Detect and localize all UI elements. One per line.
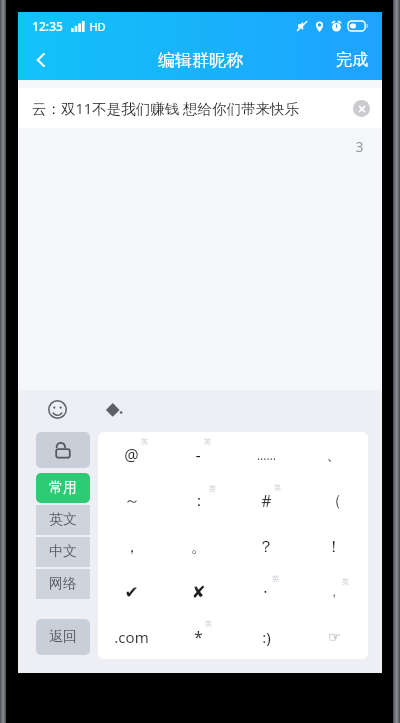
staticText: .com	[114, 627, 149, 647]
staticText: ～	[124, 491, 140, 511]
button[interactable]: .com	[98, 614, 165, 659]
staticText: 完成	[336, 50, 368, 70]
staticText: 英	[209, 484, 216, 493]
button[interactable]: ～	[98, 478, 165, 524]
button[interactable]: ✔	[98, 569, 165, 614]
staticText: 英	[205, 619, 212, 628]
staticText: ✔	[124, 582, 139, 602]
staticText: 英	[141, 437, 148, 446]
staticText: @	[124, 444, 139, 466]
staticText: ·	[263, 581, 268, 603]
button[interactable]: Clear text	[353, 100, 370, 117]
button[interactable]: @	[98, 432, 165, 478]
button[interactable]: 常用	[36, 473, 90, 503]
staticText: 网络	[49, 575, 77, 593]
staticText: （	[326, 491, 342, 511]
button[interactable]: 、	[300, 432, 368, 478]
button[interactable]: 中文	[36, 537, 90, 567]
button[interactable]: ，	[300, 569, 368, 614]
staticText: 12:35	[32, 18, 63, 34]
staticText: ，	[124, 537, 140, 557]
staticText: ：	[191, 491, 207, 511]
staticText: 。	[191, 537, 207, 557]
button[interactable]: 网络	[36, 569, 90, 599]
button[interactable]: ：	[165, 478, 232, 524]
button[interactable]: ？	[232, 524, 300, 569]
button[interactable]: 。	[165, 524, 232, 569]
staticText: 英	[204, 437, 211, 446]
button[interactable]: ，	[98, 524, 165, 569]
button[interactable]: :)	[232, 614, 300, 659]
staticText: 返回	[49, 628, 77, 646]
staticText: ☞	[328, 629, 341, 645]
staticText: 云：双11不是我们赚钱 想给你们带来快乐	[32, 98, 299, 118]
staticText: #	[261, 490, 272, 512]
button[interactable]: Emoji	[42, 394, 72, 424]
staticText: 英	[272, 574, 279, 583]
staticText: 英文	[49, 511, 77, 529]
staticText: ……	[257, 447, 276, 463]
button[interactable]: Lock	[36, 432, 90, 468]
staticText: 英	[274, 483, 281, 492]
button[interactable]: ·	[232, 569, 300, 614]
button[interactable]: 返回	[36, 619, 90, 655]
staticText: *	[194, 626, 203, 648]
button[interactable]: -	[165, 432, 232, 478]
staticText: 编辑群昵称	[158, 50, 243, 71]
staticText: ✘	[191, 582, 206, 602]
button[interactable]: ✘	[165, 569, 232, 614]
button[interactable]: ☞	[300, 614, 368, 659]
button[interactable]: Theme	[98, 394, 128, 424]
staticText: ！	[326, 537, 342, 557]
staticText: 英	[342, 577, 349, 586]
staticText: 中文	[49, 543, 77, 561]
button[interactable]: 完成	[336, 40, 368, 80]
button[interactable]: 云：双11不是我们赚钱 想给你们带来快乐	[32, 88, 370, 128]
staticText: -	[195, 444, 201, 466]
button[interactable]: ！	[300, 524, 368, 569]
button[interactable]: （	[300, 478, 368, 524]
staticText: 、	[326, 445, 342, 465]
staticText: 3	[355, 137, 364, 156]
button[interactable]: ……	[232, 432, 300, 478]
staticText: ，	[328, 584, 340, 599]
staticText: 常用	[49, 479, 77, 497]
staticText: ？	[258, 537, 274, 557]
button[interactable]: 英文	[36, 505, 90, 535]
staticText: HD	[89, 19, 106, 34]
button[interactable]: #	[232, 478, 300, 524]
button[interactable]: *	[165, 614, 232, 659]
staticText: :)	[262, 627, 271, 647]
button[interactable]: Back	[18, 40, 64, 80]
